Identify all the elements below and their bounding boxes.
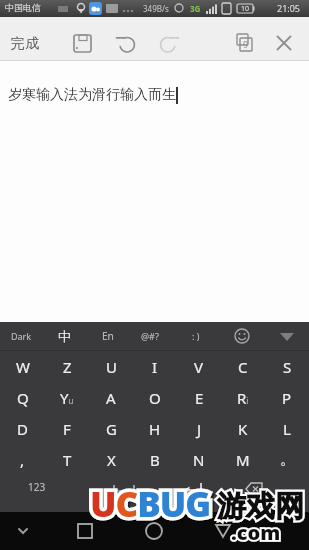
button[interactable]: Q bbox=[0, 382, 45, 413]
staticText: 10 bbox=[241, 4, 250, 14]
staticText: A bbox=[106, 388, 116, 408]
button[interactable] bbox=[232, 476, 272, 502]
staticText: 岁寒输入法为滑行输入而生 bbox=[8, 86, 176, 104]
button[interactable]: Ri bbox=[221, 382, 265, 413]
button[interactable]: En bbox=[86, 322, 130, 350]
button[interactable] bbox=[108, 29, 146, 57]
staticText: Dark bbox=[11, 330, 32, 342]
staticText: L bbox=[283, 419, 291, 439]
button[interactable]: , bbox=[0, 444, 45, 475]
button[interactable]: F bbox=[45, 413, 89, 444]
staticText: W bbox=[16, 357, 30, 377]
staticText: B bbox=[150, 450, 160, 470]
staticText: 21:05 bbox=[277, 2, 301, 14]
staticText: .com bbox=[231, 519, 281, 546]
staticText: , bbox=[20, 450, 25, 470]
button[interactable] bbox=[210, 518, 236, 544]
button[interactable]: X bbox=[89, 444, 133, 475]
button[interactable]: D bbox=[0, 413, 45, 444]
staticText: T bbox=[63, 450, 72, 470]
staticText: N bbox=[193, 450, 205, 470]
button[interactable] bbox=[141, 518, 167, 544]
button[interactable]: Yu bbox=[45, 382, 89, 413]
staticText: 9 bbox=[243, 38, 249, 50]
staticText: 游戏网 bbox=[217, 488, 304, 525]
button[interactable]: 中 bbox=[42, 322, 86, 350]
button[interactable]: P bbox=[265, 382, 309, 413]
staticText: V bbox=[194, 357, 204, 377]
button[interactable] bbox=[275, 324, 299, 348]
button[interactable] bbox=[10, 518, 36, 544]
button[interactable]: 完成 bbox=[4, 33, 46, 55]
staticText: D bbox=[17, 419, 28, 439]
button[interactable] bbox=[267, 29, 301, 57]
button[interactable]: O bbox=[133, 382, 177, 413]
staticText: 123 bbox=[28, 480, 46, 494]
button[interactable]: V bbox=[177, 351, 221, 382]
staticText: O bbox=[149, 388, 161, 408]
staticText: Ri bbox=[237, 388, 249, 408]
button[interactable] bbox=[173, 476, 213, 502]
button[interactable]: S bbox=[265, 351, 309, 382]
button[interactable]: 123 bbox=[15, 473, 59, 501]
button[interactable]: @#? bbox=[128, 322, 172, 350]
staticText: UCBUG bbox=[92, 482, 213, 530]
staticText: K bbox=[238, 419, 248, 439]
staticText: M bbox=[236, 450, 250, 470]
button[interactable] bbox=[228, 29, 262, 57]
button[interactable]: K bbox=[221, 413, 265, 444]
button[interactable]: M bbox=[221, 444, 265, 475]
staticText: 中国电信 bbox=[5, 2, 41, 13]
staticText: 中 bbox=[58, 328, 71, 344]
staticText: X bbox=[107, 450, 116, 470]
staticText: UCBUG bbox=[90, 480, 211, 528]
staticText: F bbox=[63, 419, 71, 439]
staticText: 3G bbox=[190, 3, 201, 14]
staticText: U bbox=[106, 357, 117, 377]
button[interactable] bbox=[64, 29, 102, 57]
button[interactable]: G bbox=[89, 413, 133, 444]
staticText: En bbox=[102, 329, 114, 343]
button[interactable] bbox=[104, 476, 144, 502]
staticText: Yu bbox=[60, 388, 74, 408]
button[interactable]: Z bbox=[45, 351, 89, 382]
button[interactable]: Dark bbox=[0, 322, 43, 350]
button[interactable] bbox=[72, 518, 98, 544]
staticText: G bbox=[106, 419, 117, 439]
button[interactable]: N bbox=[177, 444, 221, 475]
staticText: Z bbox=[63, 357, 72, 377]
staticText: C bbox=[238, 357, 248, 377]
button[interactable] bbox=[150, 29, 188, 57]
button[interactable]: E bbox=[177, 382, 221, 413]
staticText: E bbox=[195, 388, 204, 408]
button[interactable]: U bbox=[89, 351, 133, 382]
staticText: H bbox=[149, 419, 161, 439]
staticText: @#? bbox=[141, 330, 159, 342]
button[interactable]: T bbox=[45, 444, 89, 475]
button[interactable]: J bbox=[177, 413, 221, 444]
button[interactable]: B bbox=[133, 444, 177, 475]
staticText: I bbox=[152, 357, 158, 377]
staticText: UCBUG bbox=[90, 480, 211, 528]
staticText: .com bbox=[231, 519, 281, 546]
staticText: 完成 bbox=[10, 35, 40, 53]
staticText: Q bbox=[17, 388, 29, 408]
staticText: : ) bbox=[192, 330, 200, 342]
staticText: P bbox=[282, 388, 292, 408]
button[interactable] bbox=[230, 324, 254, 348]
button[interactable]: I bbox=[133, 351, 177, 382]
staticText: J bbox=[197, 419, 202, 439]
staticText: 。 bbox=[280, 450, 295, 469]
button[interactable]: L bbox=[265, 413, 309, 444]
button[interactable]: W bbox=[0, 351, 45, 382]
staticText: 游戏网 bbox=[217, 488, 304, 525]
staticText: S bbox=[283, 357, 292, 377]
button[interactable]: : ) bbox=[174, 322, 218, 350]
button[interactable]: H bbox=[133, 413, 177, 444]
staticText: 349B/s bbox=[143, 3, 169, 14]
button[interactable]: 。 bbox=[265, 444, 309, 475]
button[interactable]: A bbox=[89, 382, 133, 413]
button[interactable]: C bbox=[221, 351, 265, 382]
